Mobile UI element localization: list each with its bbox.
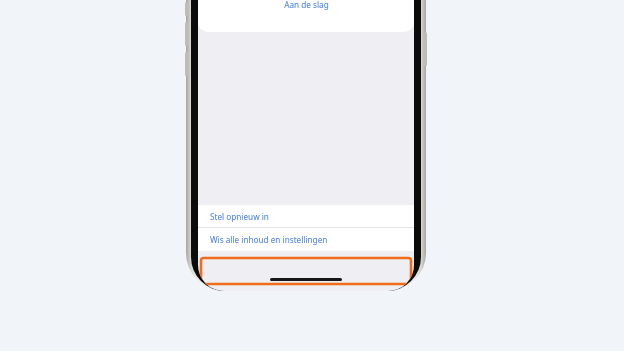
staticText: Wis alle inhoud en instellingen [210, 234, 328, 245]
button[interactable]: Stel opnieuw in [198, 205, 414, 227]
button[interactable]: Aan de slag [211, 0, 401, 12]
staticText: Stel opnieuw in [210, 211, 269, 222]
button[interactable]: Wis alle inhoud en instellingen [198, 228, 414, 251]
staticText: Aan de slag [284, 0, 329, 10]
